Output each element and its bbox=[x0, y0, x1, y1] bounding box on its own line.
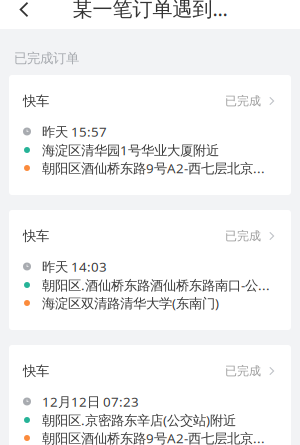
staticText: 已完成 bbox=[225, 229, 261, 243]
button[interactable]: 快车 bbox=[9, 75, 291, 195]
staticText: 昨天 15:57 bbox=[42, 123, 107, 140]
staticText: 昨天 14:03 bbox=[42, 258, 107, 275]
staticText: 快车 bbox=[23, 93, 49, 109]
staticText: 海淀区双清路清华大学(东南门) bbox=[42, 294, 219, 312]
staticText: 朝阳区酒仙桥东路9号A2-西七层北京... bbox=[42, 429, 265, 445]
staticText: 朝阳区.酒仙桥东路酒仙桥东路南口-公... bbox=[42, 276, 270, 294]
staticText: 快车 bbox=[23, 363, 49, 379]
staticText: 朝阳区酒仙桥东路9号A2-西七层北京... bbox=[42, 159, 265, 177]
button[interactable]: 快车 bbox=[9, 210, 291, 330]
staticText: 12月12日 07:23 bbox=[42, 393, 139, 410]
button[interactable]: Back bbox=[0, 0, 42, 24]
staticText: 已完成 bbox=[225, 364, 261, 378]
staticText: 快车 bbox=[23, 228, 49, 244]
button[interactable]: 快车 bbox=[9, 345, 291, 445]
staticText: 已完成订单 bbox=[14, 50, 79, 66]
staticText: 朝阳区.京密路东辛店(公交站)附近 bbox=[42, 411, 236, 429]
staticText: 已完成 bbox=[225, 94, 261, 108]
staticText: 某一笔订单遇到... bbox=[72, 0, 227, 22]
staticText: 海淀区清华园1号华业大厦附近 bbox=[42, 141, 219, 159]
